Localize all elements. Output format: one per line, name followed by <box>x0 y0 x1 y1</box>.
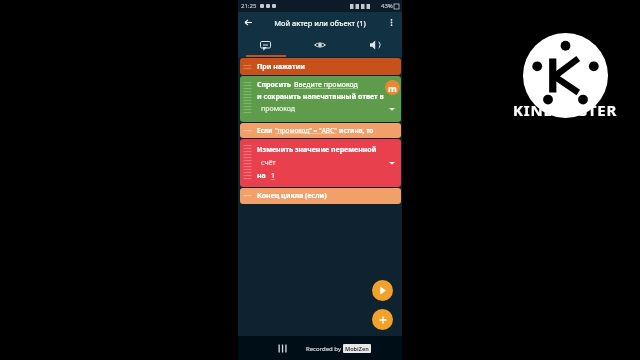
button[interactable]: При нажатии <box>240 58 401 75</box>
staticText: и сохранить напечатанный ответ в <box>257 92 384 102</box>
button[interactable]: Конец цикла (если) <box>240 188 401 204</box>
button[interactable]: Preview <box>292 33 347 57</box>
staticText: 1 <box>271 171 276 181</box>
button[interactable]: Sound <box>347 33 402 57</box>
button[interactable]: Blocks <box>238 33 292 57</box>
button[interactable]: Спросить <box>240 76 401 122</box>
staticText: Если <box>257 126 273 135</box>
staticText: Изменить значение переменной <box>257 145 377 155</box>
staticText: "промокод" = "ABC" <box>275 126 337 135</box>
staticText: m <box>388 82 397 94</box>
button[interactable]: Изменить значение переменной <box>240 139 401 187</box>
staticText: Конец цикла (если) <box>257 191 327 201</box>
staticText: счёт <box>261 158 276 168</box>
staticText: MobiZen <box>345 345 369 352</box>
staticText: Спросить <box>257 80 291 90</box>
button[interactable]: Run <box>372 280 393 301</box>
staticText: KINEMASTER <box>513 100 618 120</box>
button[interactable]: Back <box>238 12 259 33</box>
button[interactable]: Если <box>240 123 401 138</box>
staticText: Введите промокод <box>294 80 358 90</box>
staticText: 43% <box>381 2 393 10</box>
staticText: При нажатии <box>257 62 305 72</box>
button[interactable]: Recents <box>272 338 292 358</box>
staticText: Recorded by <box>306 345 341 353</box>
button[interactable]: Add block <box>372 309 393 330</box>
staticText: промокод <box>261 104 296 114</box>
staticText: истина, то <box>339 126 374 135</box>
button[interactable]: More options <box>381 12 402 33</box>
staticText: 21:25 <box>241 2 257 10</box>
staticText: на <box>257 171 266 181</box>
staticText: Мой актер или объект (1) <box>274 18 366 28</box>
